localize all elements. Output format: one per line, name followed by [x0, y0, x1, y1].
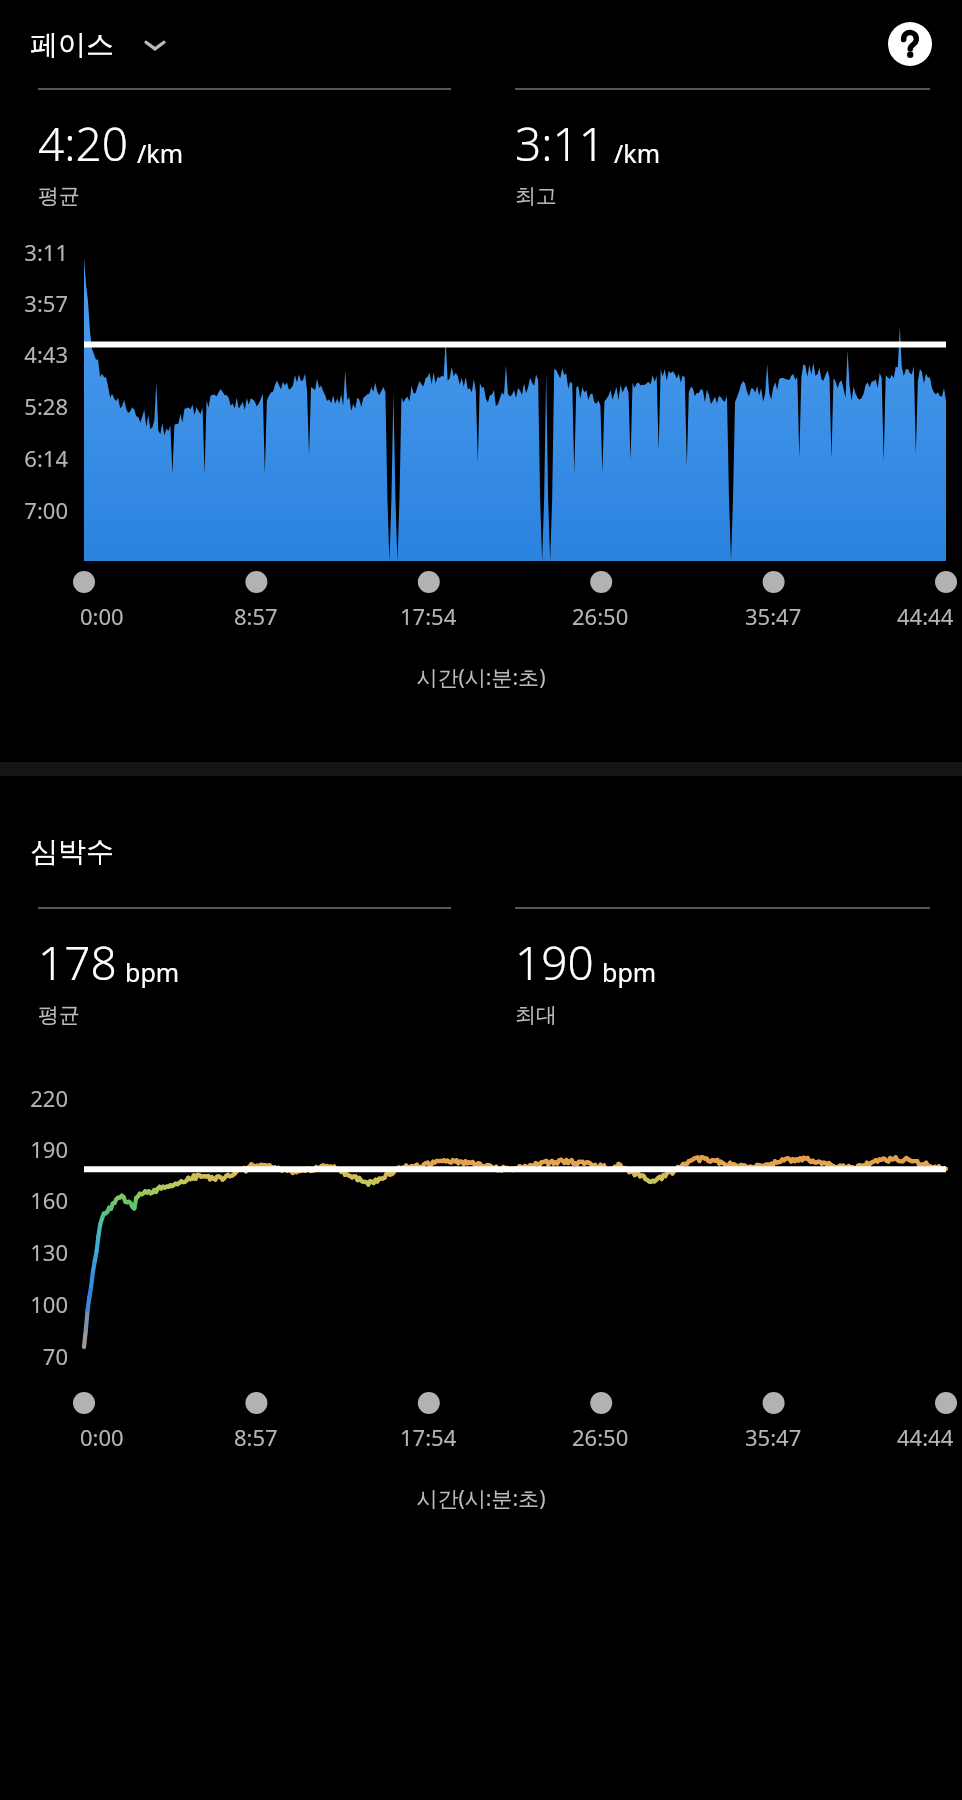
staticText: 0:00	[80, 1422, 124, 1452]
staticText: /km	[137, 136, 184, 170]
staticText: 평균	[38, 183, 80, 209]
staticText: 70	[0, 1341, 68, 1371]
staticText: 0:00	[80, 601, 124, 631]
button[interactable]: 페이스	[26, 21, 174, 68]
staticText: 17:54	[400, 1422, 457, 1452]
staticText: 190	[515, 931, 594, 994]
staticText: 심박수	[30, 834, 114, 869]
staticText: 3:11	[515, 112, 606, 175]
staticText: 35:47	[745, 601, 802, 631]
staticText: 220	[0, 1083, 68, 1113]
staticText: 26:50	[572, 1422, 629, 1452]
staticText: 3:11	[0, 237, 68, 267]
staticText: 26:50	[572, 601, 629, 631]
staticText: 3:57	[0, 288, 68, 318]
staticText: 최고	[515, 183, 557, 209]
staticText: 35:47	[745, 1422, 802, 1452]
staticText: 4:43	[0, 339, 68, 369]
staticText: 190	[0, 1134, 68, 1164]
staticText: 44:44	[897, 1422, 954, 1452]
staticText: 평균	[38, 1002, 80, 1028]
staticText: 8:57	[234, 1422, 278, 1452]
staticText: /km	[614, 136, 661, 170]
staticText: 100	[0, 1289, 68, 1319]
staticText: 페이스	[30, 27, 114, 62]
staticText: 시간(시:분:초)	[0, 1484, 962, 1513]
staticText: 4:20	[38, 112, 129, 175]
staticText: 130	[0, 1237, 68, 1267]
staticText: 7:00	[0, 495, 68, 525]
staticText: 최대	[515, 1002, 557, 1028]
staticText: 8:57	[234, 601, 278, 631]
staticText: 시간(시:분:초)	[0, 663, 962, 692]
staticText: 178	[38, 931, 117, 994]
staticText: bpm	[602, 955, 657, 989]
staticText: 160	[0, 1185, 68, 1215]
staticText: 17:54	[400, 601, 457, 631]
staticText: 5:28	[0, 391, 68, 421]
staticText: 6:14	[0, 443, 68, 473]
staticText: 44:44	[897, 601, 954, 631]
button[interactable]: 도움말	[882, 16, 938, 72]
staticText: bpm	[125, 955, 180, 989]
